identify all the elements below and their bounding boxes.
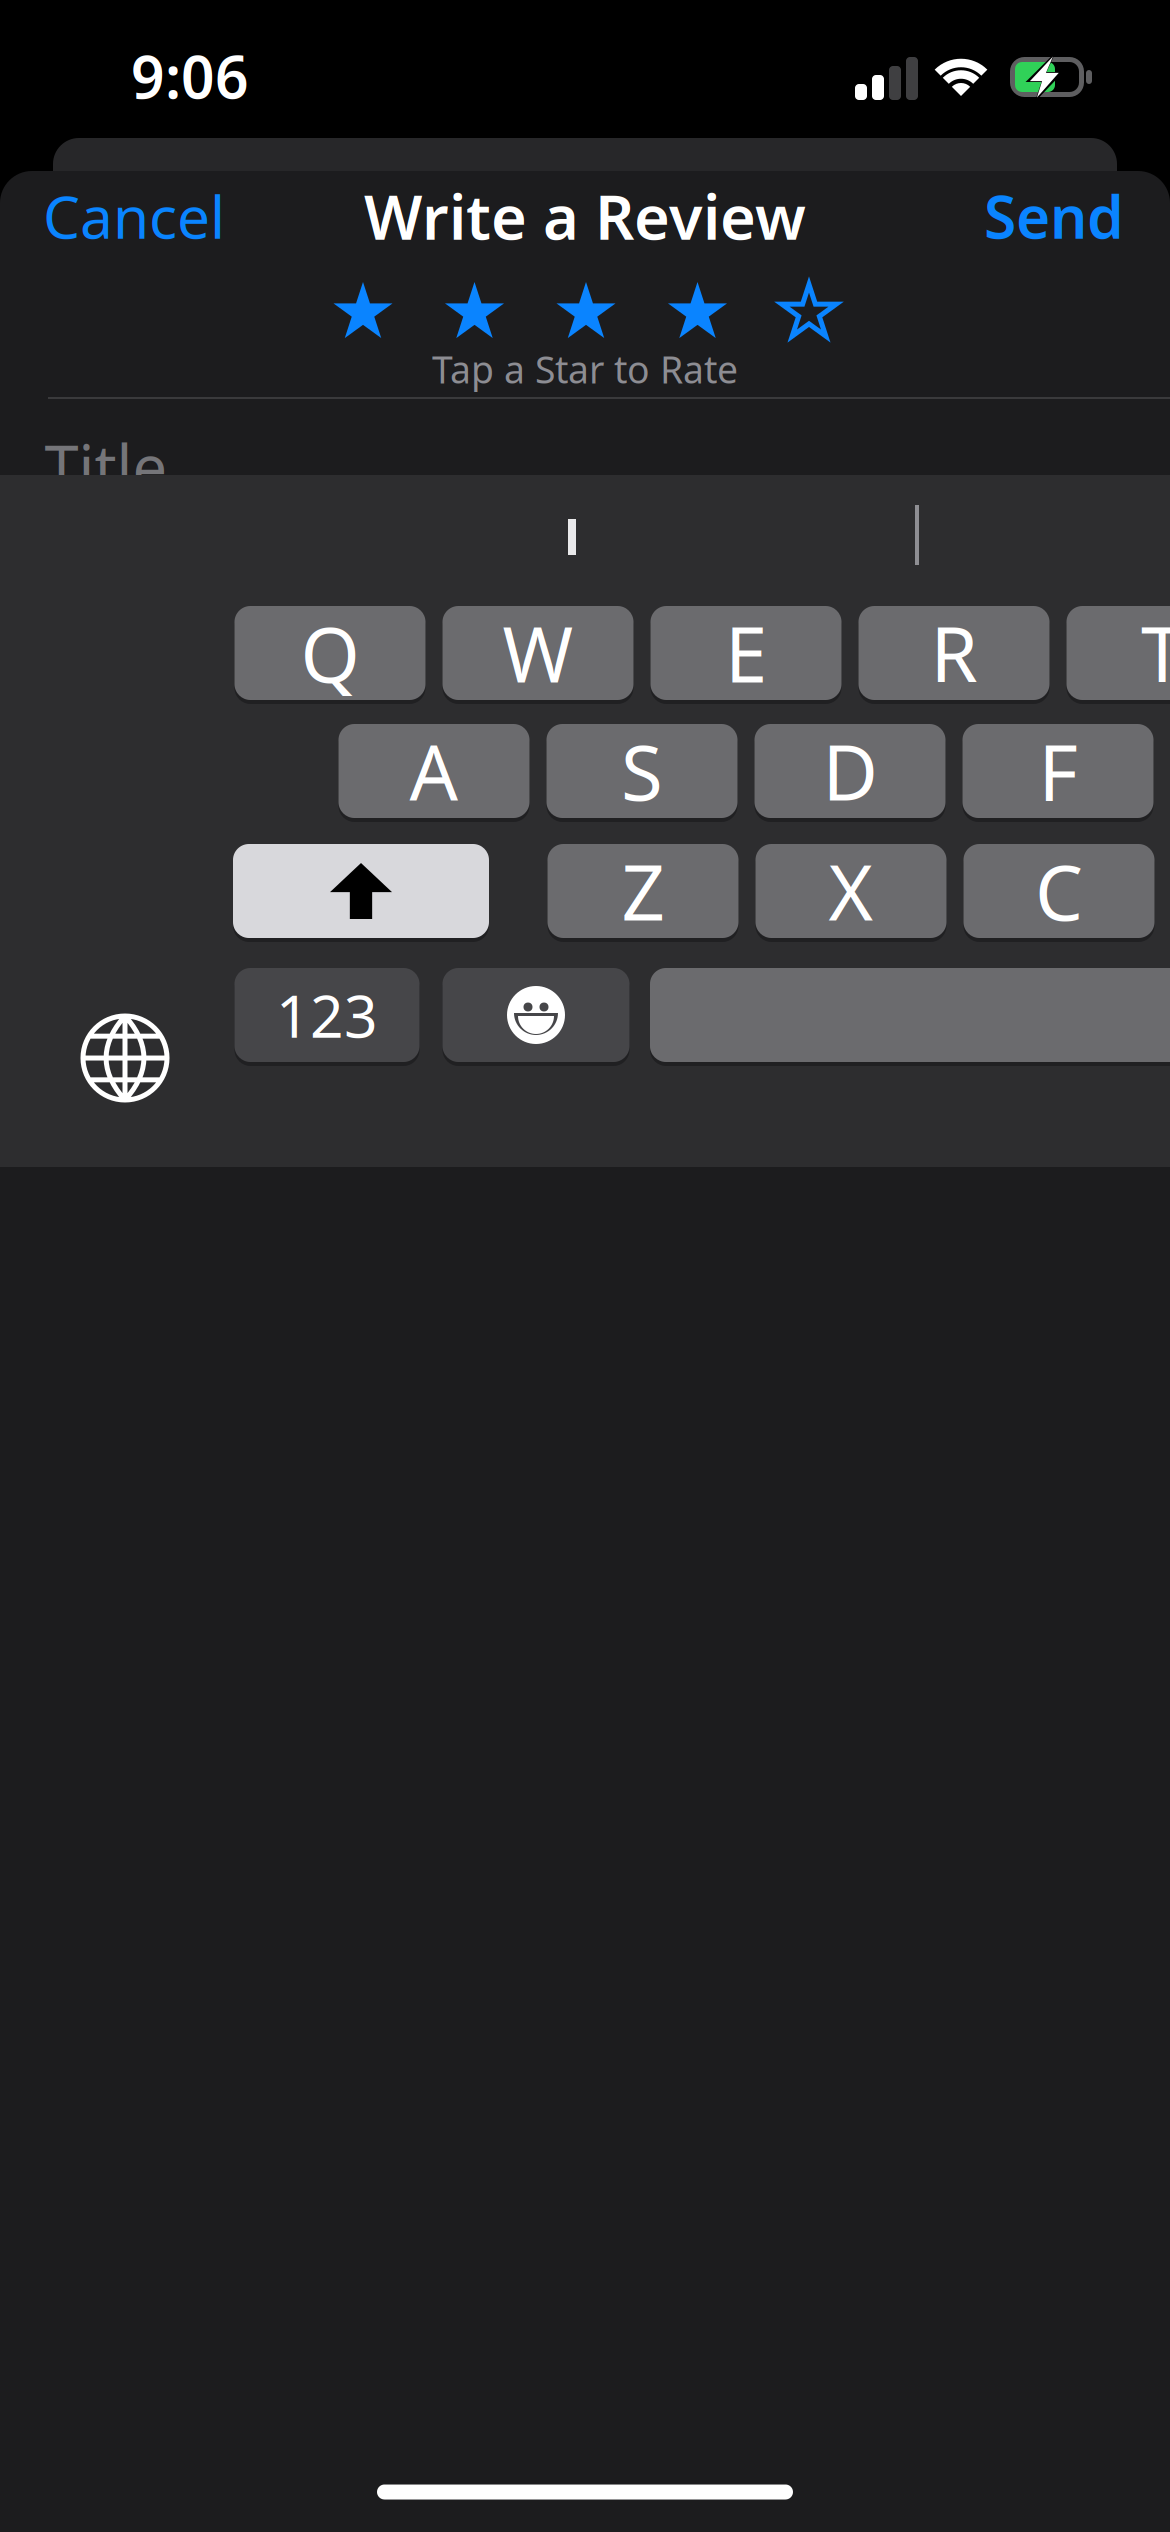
button[interactable]: E [650, 606, 841, 700]
button[interactable]: Shift [233, 844, 489, 938]
button[interactable]: Next keyboard [83, 1016, 167, 1100]
staticText: Write a Review [364, 175, 806, 257]
button[interactable]: Emoji [442, 968, 629, 1062]
staticText: A [409, 720, 458, 821]
staticText: W [502, 602, 573, 703]
button[interactable]: Space [650, 968, 1170, 1062]
staticText: Send [984, 177, 1124, 255]
button[interactable]: Rate 3 stars [555, 282, 617, 344]
staticText: F [1038, 720, 1077, 821]
button[interactable]: S [546, 724, 737, 818]
button[interactable]: Rate 5 stars [780, 284, 837, 341]
staticText: X [828, 840, 873, 941]
staticText: C [1035, 840, 1083, 941]
button[interactable]: R [858, 606, 1049, 700]
staticText: Tap a Star to Rate [432, 344, 738, 394]
button[interactable]: Rate 2 stars [443, 282, 505, 344]
button[interactable]: Cancel [43, 177, 225, 255]
button[interactable]: F [962, 724, 1153, 818]
button[interactable]: Rate 1 stars [332, 282, 394, 344]
staticText: Q [300, 602, 359, 703]
staticText: E [725, 602, 767, 703]
staticText: S [621, 720, 663, 821]
button[interactable]: Rate 4 stars [666, 282, 728, 344]
button[interactable]: C [963, 844, 1154, 938]
button[interactable]: 123 [234, 968, 419, 1062]
button[interactable]: W [442, 606, 633, 700]
staticText: Cancel [43, 177, 225, 255]
staticText: R [930, 602, 977, 703]
staticText: T [1141, 602, 1170, 703]
staticText: 123 [276, 976, 378, 1054]
button[interactable]: T [1066, 606, 1170, 700]
staticText: 9:06 [131, 37, 249, 115]
staticText: Title [44, 425, 167, 507]
button[interactable]: X [755, 844, 946, 938]
button[interactable]: Q [234, 606, 425, 700]
staticText: Z [621, 840, 664, 941]
button[interactable]: Z [547, 844, 738, 938]
staticText: D [822, 720, 877, 821]
button[interactable]: Send [984, 177, 1124, 255]
button[interactable]: A [338, 724, 529, 818]
button[interactable]: D [754, 724, 945, 818]
